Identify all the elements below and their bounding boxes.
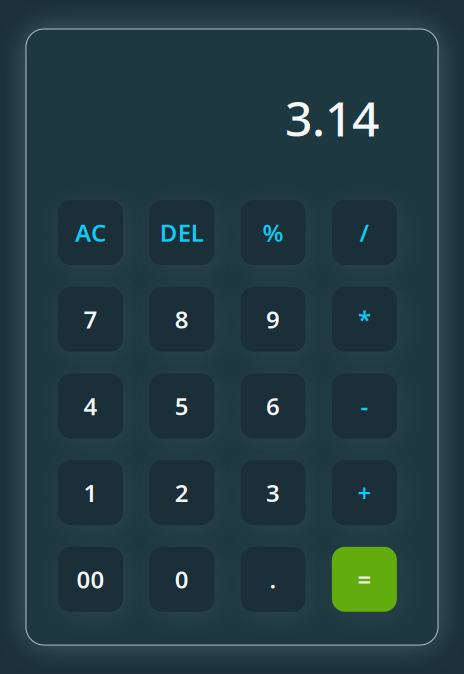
staticText: 1 [83,477,97,509]
staticText: - [360,390,368,422]
button[interactable]: All clear [58,200,123,265]
staticText: / [359,217,369,248]
button[interactable]: Six [241,373,306,438]
staticText: 0 [175,563,189,595]
staticText: 9 [266,303,280,335]
button[interactable]: Eight [149,287,214,352]
staticText: 7 [83,303,97,335]
button[interactable]: Nine [241,287,306,352]
staticText: = [357,563,371,595]
button[interactable]: Add [332,460,397,525]
button[interactable]: Decimal point [241,547,306,612]
staticText: AC [75,217,106,248]
staticText: 5 [175,390,189,422]
staticText: 3 [266,477,280,509]
button[interactable]: Percent [241,200,306,265]
button[interactable]: Two [149,460,214,525]
staticText: * [358,303,371,335]
staticText: . [270,563,277,595]
staticText: 00 [76,563,104,595]
staticText: DEL [160,217,204,248]
staticText: % [263,217,284,248]
button[interactable]: Multiply [332,287,397,352]
button[interactable]: Subtract [332,373,397,438]
button[interactable]: Double zero [58,547,123,612]
button[interactable]: Three [241,460,306,525]
button[interactable]: Five [149,373,214,438]
staticText: 6 [266,390,280,422]
staticText: 3.14 [285,86,379,150]
button[interactable]: Delete [149,200,214,265]
button[interactable]: Equals [332,547,397,612]
button[interactable]: Zero [149,547,214,612]
staticText: 4 [83,390,97,422]
button[interactable]: One [58,460,123,525]
button[interactable]: Four [58,373,123,438]
button[interactable]: Seven [58,287,123,352]
button[interactable]: Divide [332,200,397,265]
staticText: 8 [175,303,189,335]
staticText: 2 [175,477,189,509]
staticText: + [357,477,371,509]
